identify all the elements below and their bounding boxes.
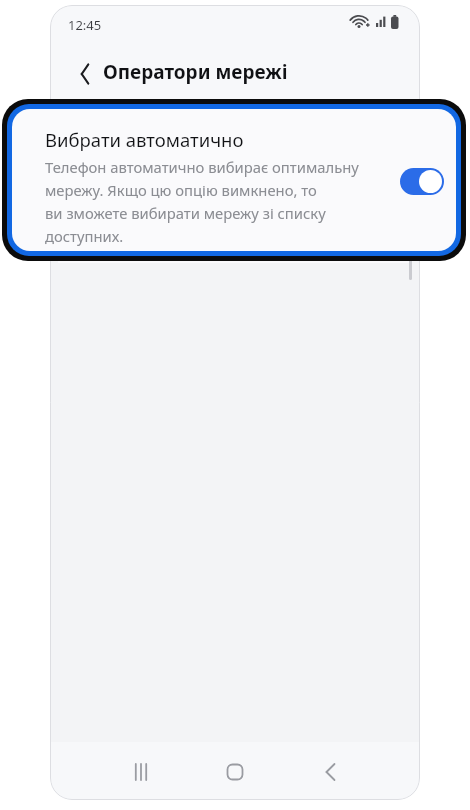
staticText: Оператори мережі bbox=[103, 59, 288, 85]
staticText: Вибрати автоматично bbox=[45, 127, 244, 152]
button[interactable]: Вибрати автоматично bbox=[12, 109, 456, 251]
button[interactable]: Recents bbox=[125, 756, 157, 788]
button[interactable]: Home bbox=[219, 756, 251, 788]
button[interactable]: Back bbox=[313, 756, 345, 788]
button[interactable]: Back bbox=[68, 58, 100, 90]
staticText: 12:45 bbox=[68, 16, 102, 34]
button[interactable]: Select automatically toggle, on bbox=[400, 168, 444, 195]
staticText: Телефон автоматично вибирає оптимальну м… bbox=[45, 157, 359, 247]
